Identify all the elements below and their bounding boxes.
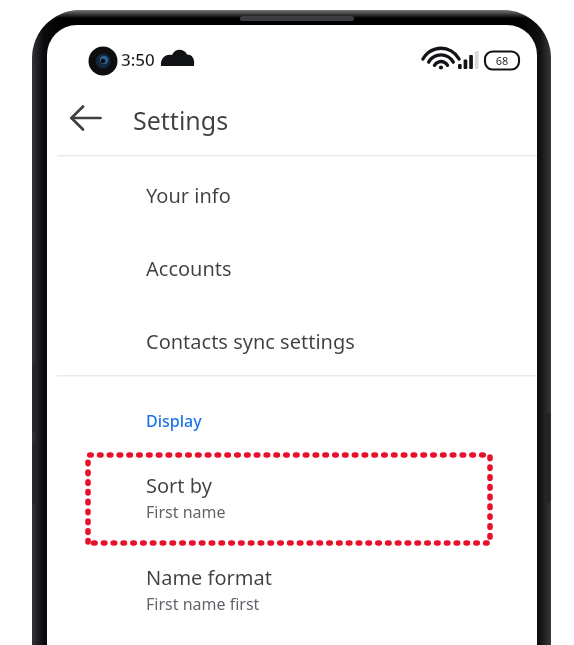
- staticText: Your info: [146, 182, 231, 209]
- staticText: Contacts sync settings: [146, 328, 355, 355]
- staticText: Display: [146, 410, 202, 432]
- staticText: First name: [146, 501, 226, 523]
- staticText: 68: [490, 53, 514, 68]
- button[interactable]: Name format: [57, 556, 537, 632]
- staticText: 3:50: [121, 48, 155, 71]
- button[interactable]: Accounts: [57, 237, 537, 299]
- staticText: Sort by: [146, 472, 212, 499]
- staticText: First name first: [146, 593, 260, 615]
- button[interactable]: Sort by: [57, 464, 537, 540]
- staticText: Accounts: [146, 255, 232, 282]
- staticText: Settings: [133, 103, 229, 137]
- button[interactable]: Back: [62, 94, 110, 142]
- staticText: Name format: [146, 564, 272, 591]
- button[interactable]: Your info: [57, 164, 537, 226]
- button[interactable]: Contacts sync settings: [57, 310, 537, 372]
